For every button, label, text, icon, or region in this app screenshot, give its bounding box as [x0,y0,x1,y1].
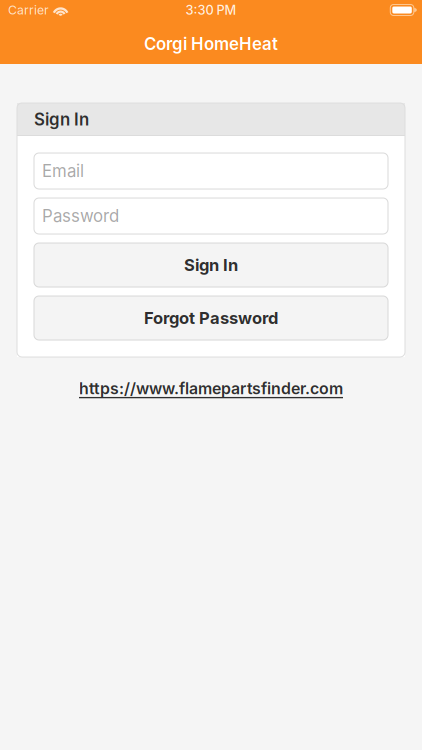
button[interactable]: https://www.flamepartsfinder.com [59,370,363,407]
staticText: https://www.flamepartsfinder.com [79,379,343,398]
staticText: Sign In [34,109,89,130]
staticText: 3:30 PM [185,2,236,18]
staticText: Forgot Password [144,308,278,328]
button[interactable]: Sign In [34,243,388,287]
button[interactable]: Email [34,153,388,189]
button[interactable]: Forgot Password [34,296,388,340]
button[interactable]: Password [34,198,388,234]
staticText: Carrier [8,3,49,17]
staticText: Password [42,206,119,226]
staticText: Email [42,161,84,181]
staticText: Sign In [184,255,238,275]
staticText: Corgi HomeHeat [144,34,278,54]
